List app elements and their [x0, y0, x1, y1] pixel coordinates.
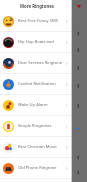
button[interactable]: Simple Ringtones [0, 116, 87, 136]
button[interactable]: Coolest Notification [0, 74, 87, 94]
staticText: Best Free Funny SMS [18, 18, 64, 24]
button[interactable]: Best Christian Music [0, 137, 87, 157]
staticText: Best Christian Music [18, 144, 64, 150]
button[interactable]: Best Free Funny SMS [0, 11, 87, 31]
staticText: Wake Up Alarm [18, 102, 64, 108]
staticText: Old Phone Ringtone [18, 165, 64, 171]
button[interactable]: Dear Serenas Ringtone [0, 53, 87, 73]
staticText: Dear Serenas Ringtone [18, 60, 64, 66]
staticText: Hip Hop Beats and [18, 39, 64, 45]
staticText: Coolest Notification [18, 81, 64, 87]
button[interactable]: Wake Up Alarm [0, 95, 87, 115]
staticText: Simple Ringtones [18, 123, 64, 129]
button[interactable]: Hip Hop Beats and [0, 32, 87, 52]
button[interactable]: Old Phone Ringtone [0, 158, 87, 178]
button[interactable]: Favorites [71, 0, 87, 11]
staticText: More Ringtones [20, 3, 54, 9]
